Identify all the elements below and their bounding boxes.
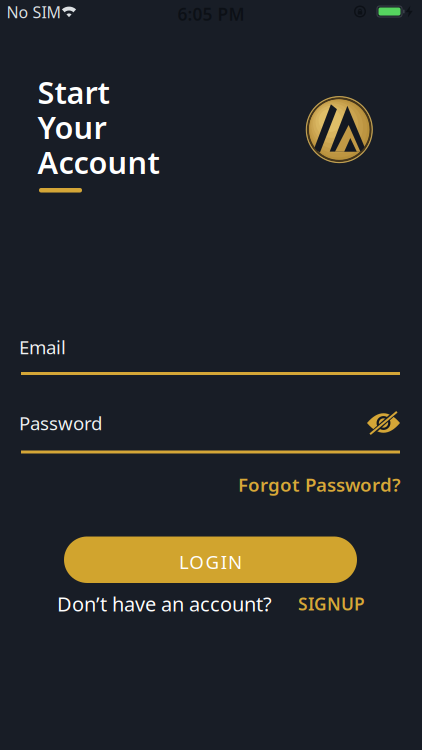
button[interactable]: Forgot Password? (238, 472, 401, 497)
button[interactable]: SIGNUP (298, 592, 365, 615)
button[interactable]: LOGIN (64, 536, 357, 583)
staticText: Start (37, 72, 109, 112)
staticText: Account (37, 142, 159, 182)
staticText: 6:05 PM (177, 2, 244, 25)
button[interactable]: Show password (362, 407, 402, 439)
staticText: Password (19, 410, 102, 435)
staticText: Don’t have an account? (57, 590, 272, 617)
staticText: No SIM (6, 1, 61, 23)
staticText: Email (19, 334, 66, 359)
staticText: Forgot Password? (238, 472, 401, 497)
staticText: SIGNUP (298, 592, 365, 615)
staticText: Your (37, 107, 106, 147)
staticText: LOGIN (179, 549, 242, 574)
